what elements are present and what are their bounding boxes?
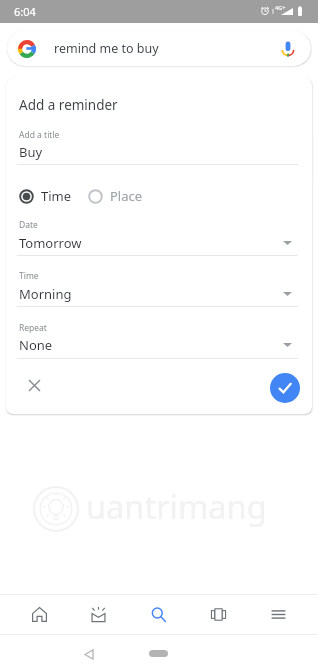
staticText: Add a title bbox=[19, 129, 60, 141]
button[interactable]: Save reminder bbox=[270, 373, 300, 403]
staticText: Place bbox=[110, 187, 143, 205]
staticText: 4G+ bbox=[275, 4, 286, 11]
staticText: Repeat bbox=[19, 322, 47, 334]
button[interactable]: More bbox=[248, 595, 308, 634]
staticText: Add a reminder bbox=[19, 96, 118, 114]
button[interactable]: Collections bbox=[188, 595, 248, 634]
staticText: 6:04 bbox=[14, 4, 36, 19]
button[interactable]: Updates bbox=[69, 595, 128, 634]
staticText: Morning bbox=[19, 285, 72, 303]
button[interactable]: Home bbox=[10, 595, 69, 634]
button[interactable]: remind me to buy bbox=[7, 31, 311, 66]
staticText: Date bbox=[19, 219, 38, 231]
staticText: Time bbox=[41, 187, 72, 205]
staticText: Time bbox=[19, 270, 39, 282]
staticText: Tomorrow bbox=[19, 234, 82, 252]
staticText: uantrimang bbox=[86, 484, 267, 528]
staticText: Buy bbox=[19, 143, 43, 161]
button[interactable]: Time bbox=[19, 187, 72, 205]
staticText: remind me to buy bbox=[54, 40, 159, 57]
staticText: None bbox=[19, 336, 53, 354]
button[interactable]: Search bbox=[128, 595, 188, 634]
button[interactable]: Place bbox=[88, 187, 143, 205]
button[interactable]: Close bbox=[20, 371, 49, 400]
